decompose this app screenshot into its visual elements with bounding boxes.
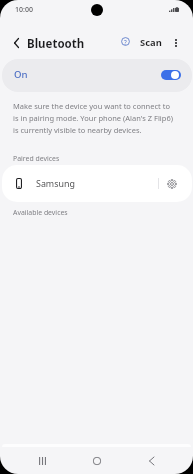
staticText: 10:00 [15, 5, 33, 15]
staticText: Bluetooth [27, 36, 85, 52]
button[interactable]: Device settings [162, 174, 182, 194]
button[interactable]: On [2, 59, 192, 92]
button[interactable]: Back [5, 31, 28, 54]
button[interactable]: Home [84, 448, 110, 474]
staticText: ? [124, 38, 127, 46]
staticText: Paired devices [13, 154, 60, 163]
staticText: Samsung [36, 177, 75, 189]
button[interactable]: Samsung [2, 165, 192, 202]
button[interactable]: Back [138, 448, 164, 474]
staticText: Make sure the device you want to connect… [13, 101, 175, 135]
button[interactable]: More options [165, 32, 186, 53]
staticText: Available devices [13, 208, 68, 217]
button[interactable]: Help [114, 30, 137, 53]
button[interactable]: Scan [140, 36, 162, 49]
staticText: On [14, 68, 28, 81]
button[interactable]: Recent apps [30, 448, 55, 473]
